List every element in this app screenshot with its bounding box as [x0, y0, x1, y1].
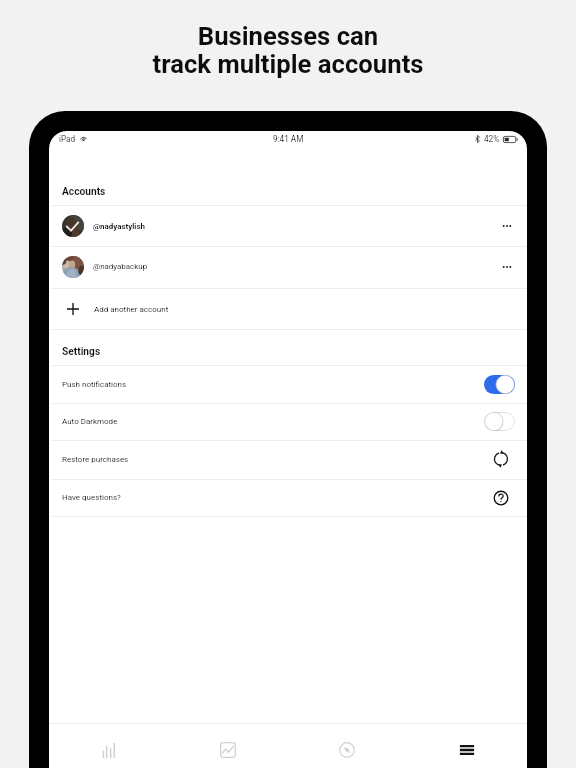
staticText: Settings	[62, 346, 101, 358]
button[interactable]: Statistics	[49, 724, 168, 768]
button[interactable]: @nadyabackup	[49, 246, 527, 287]
staticText: Businesses can track multiple accounts	[152, 21, 424, 80]
button[interactable]: Auto Darkmode	[49, 403, 527, 440]
staticText: @nadyabackup	[93, 262, 148, 271]
button[interactable]: Restore purchases	[493, 451, 509, 467]
button[interactable]: @nadyastylish	[49, 205, 527, 247]
button[interactable]: Help	[493, 490, 509, 506]
button[interactable]: More options	[499, 259, 515, 275]
staticText: @nadyastylish	[93, 222, 145, 231]
button[interactable]: Photos	[168, 724, 287, 768]
staticText: 42%	[484, 134, 500, 144]
staticText: Accounts	[62, 186, 106, 198]
staticText: Restore purchases	[62, 455, 129, 464]
staticText: 9:41 AM	[273, 134, 304, 144]
button[interactable]: More options	[499, 218, 515, 234]
staticText: Add another account	[94, 305, 169, 314]
button[interactable]: Explore	[287, 724, 407, 768]
button[interactable]: Restore purchases	[49, 440, 527, 478]
staticText: Have questions?	[62, 493, 121, 502]
button[interactable]: Have questions?	[49, 479, 527, 516]
button[interactable]: Menu	[407, 724, 527, 768]
button[interactable]: Push notifications	[49, 365, 527, 403]
button[interactable]: Add another account	[49, 288, 527, 330]
staticText: Push notifications	[62, 380, 127, 389]
staticText: iPad	[59, 134, 76, 144]
button[interactable]: Toggle on	[484, 375, 515, 394]
staticText: Auto Darkmode	[62, 417, 118, 426]
button[interactable]: Toggle off	[484, 412, 515, 431]
